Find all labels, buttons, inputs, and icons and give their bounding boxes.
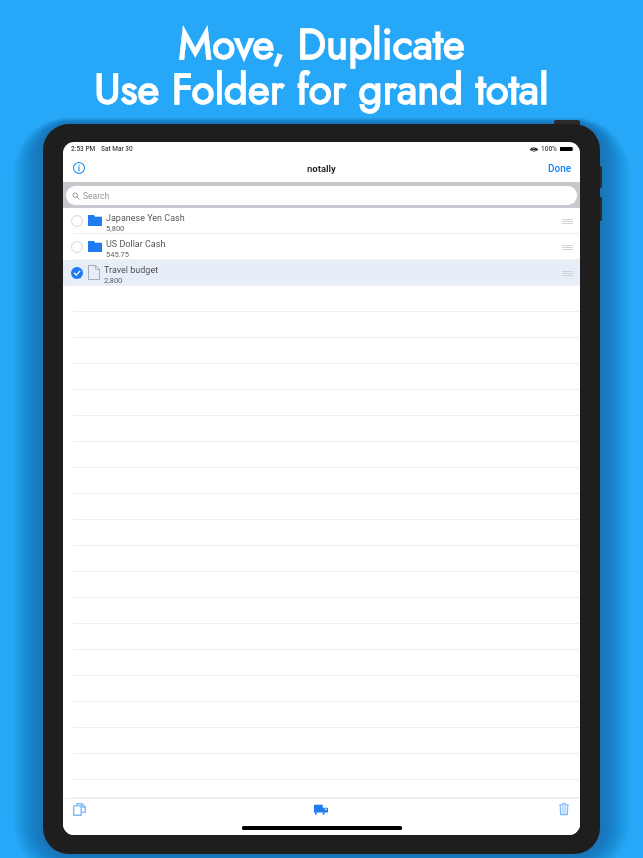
staticText: Search bbox=[83, 191, 110, 201]
staticText: 100% bbox=[541, 145, 557, 153]
staticText: 2:53 PM bbox=[71, 145, 96, 153]
staticText: Japanese Yen Cash bbox=[106, 213, 185, 224]
button[interactable]: Search bbox=[66, 186, 577, 205]
staticText: 2,800 bbox=[104, 276, 123, 285]
button[interactable]: Move bbox=[312, 803, 330, 816]
button[interactable]: Duplicate bbox=[70, 803, 88, 816]
staticText: 545.75 bbox=[106, 250, 130, 259]
button[interactable]: Info bbox=[72, 161, 86, 175]
staticText: US Dollar Cash bbox=[106, 239, 166, 250]
button[interactable]: US Dollar Cash bbox=[63, 234, 580, 260]
button[interactable]: Japanese Yen Cash bbox=[63, 208, 580, 234]
staticText: Travel budget bbox=[104, 265, 159, 276]
staticText: 5,800 bbox=[106, 224, 125, 233]
staticText: Move, Duplicate Use Folder for grand tot… bbox=[94, 14, 549, 120]
staticText: Sat Mar 30 bbox=[101, 145, 133, 153]
staticText: notally bbox=[307, 163, 336, 174]
button[interactable]: Done bbox=[548, 163, 572, 175]
button[interactable]: Delete bbox=[555, 803, 573, 816]
staticText: Done bbox=[548, 163, 572, 175]
button[interactable]: Travel budget bbox=[63, 260, 580, 286]
